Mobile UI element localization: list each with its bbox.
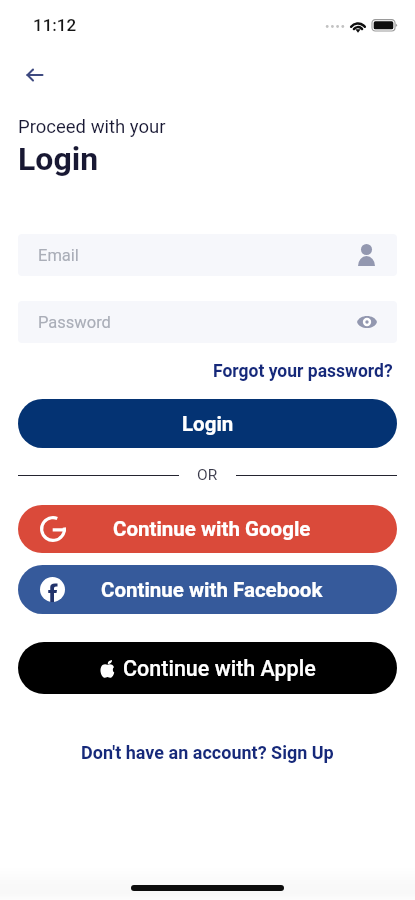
staticText: Continue with Google [113,517,311,541]
staticText: Password [38,313,111,332]
staticText: Don't have an account? Sign Up [81,742,334,763]
staticText: Forgot your password? [213,361,393,382]
button[interactable]: Forgot your password? [213,361,393,382]
button[interactable]: Continue with Apple [18,642,397,694]
button[interactable]: Continue with Facebook [18,565,397,614]
staticText: Continue with Apple [123,656,316,681]
staticText: OR [197,466,218,484]
staticText: Login [18,140,99,178]
staticText: Login [182,412,234,436]
button[interactable]: Continue with Google [18,505,397,553]
button[interactable]: Back [14,54,56,96]
button[interactable]: Password [18,301,397,343]
button[interactable]: Login [18,399,397,448]
button[interactable]: Don't have an account? Sign Up [81,742,334,763]
button[interactable]: Email [18,234,397,276]
staticText: 11:12 [33,15,77,35]
staticText: Proceed with your [18,116,166,138]
staticText: Email [38,246,79,265]
staticText: Continue with Facebook [101,578,323,602]
